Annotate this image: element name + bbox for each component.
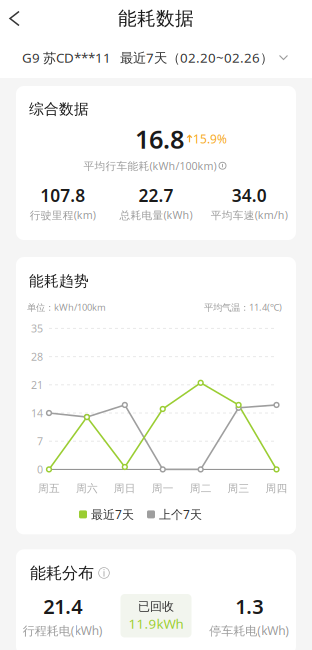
staticText: 最近7天 xyxy=(91,506,134,522)
staticText: 停车耗电(kWh) xyxy=(209,623,289,638)
button[interactable]: Back xyxy=(5,7,33,29)
staticText: 22.7 xyxy=(138,184,173,207)
staticText: 周四 xyxy=(265,482,287,495)
button[interactable]: G9 苏CD***11 xyxy=(22,49,111,66)
staticText: 21 xyxy=(31,378,43,392)
staticText: 已回收 xyxy=(138,599,174,614)
staticText: 周一 xyxy=(152,482,174,495)
staticText: 14 xyxy=(31,406,43,420)
staticText: 单位：kWh/100km xyxy=(27,301,106,313)
staticText: 周日 xyxy=(114,482,136,495)
staticText: 28 xyxy=(31,349,43,364)
staticText: 平均气温：11.4(℃) xyxy=(204,301,282,313)
staticText: 周三 xyxy=(228,482,250,495)
staticText: 平均行车能耗(kWh/100km) xyxy=(83,159,216,173)
staticText: 周五 xyxy=(38,482,60,495)
staticText: 107.8 xyxy=(40,184,85,207)
staticText: 上个7天 xyxy=(159,506,202,522)
staticText: 周二 xyxy=(190,482,212,495)
staticText: 周六 xyxy=(76,482,98,495)
staticText: ⓘ xyxy=(98,566,110,580)
staticText: 35 xyxy=(31,321,43,335)
staticText: 0 xyxy=(37,462,43,476)
staticText: 16.8 xyxy=(135,122,184,156)
staticText: 行程耗电(kWh) xyxy=(23,623,103,638)
staticText: 11.9kWh xyxy=(128,615,183,632)
staticText: 能耗分布 xyxy=(30,563,94,583)
staticText: 1.3 xyxy=(235,593,263,620)
staticText: 能耗数据 xyxy=(118,7,194,30)
staticText: 最近7天（02.20~02.26） xyxy=(120,49,273,66)
staticText: 15.9% xyxy=(193,131,227,147)
staticText: 平均车速(km/h) xyxy=(211,208,288,222)
staticText: 能耗趋势 xyxy=(29,272,89,290)
staticText: 34.0 xyxy=(232,184,267,207)
staticText: 总耗电量(kWh) xyxy=(119,208,192,222)
staticText: 行驶里程(km) xyxy=(30,208,96,222)
button[interactable]: 最近7天（02.20~02.26） xyxy=(120,49,288,66)
staticText: 21.4 xyxy=(43,593,82,620)
staticText: G9 苏CD***11 xyxy=(22,49,111,66)
staticText: 综合数据 xyxy=(29,100,89,118)
staticText: 7 xyxy=(37,434,43,448)
